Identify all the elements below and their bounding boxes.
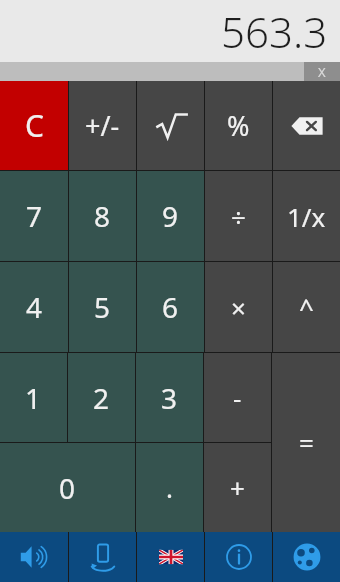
staticText: ÷ — [231, 199, 246, 234]
button[interactable]: 7 — [0, 171, 68, 261]
button[interactable]: - — [204, 353, 271, 442]
button[interactable]: ^ — [273, 262, 340, 352]
button[interactable]: 2 — [68, 353, 135, 442]
staticText: 563.3 — [221, 3, 328, 60]
staticText: . — [166, 470, 173, 505]
button[interactable]: +/- — [69, 81, 136, 170]
button[interactable]: 3 — [136, 353, 203, 442]
staticText: % — [227, 107, 250, 144]
staticText: 9 — [162, 197, 179, 235]
staticText: X — [318, 63, 326, 81]
button[interactable]: Web — [273, 532, 340, 582]
button[interactable]: 8 — [69, 171, 136, 261]
staticText: = — [299, 425, 314, 460]
staticText: × — [231, 290, 246, 325]
staticText: 2 — [93, 379, 110, 417]
staticText: +/- — [85, 107, 120, 144]
button[interactable]: ÷ — [205, 171, 272, 261]
button[interactable]: . — [136, 443, 203, 532]
button[interactable]: 1 — [0, 353, 67, 442]
staticText: 1/x — [287, 199, 326, 234]
button[interactable]: Square root — [137, 81, 204, 170]
button[interactable]: 6 — [137, 262, 204, 352]
staticText: 3 — [161, 379, 178, 417]
button[interactable]: Close — [304, 62, 340, 81]
button[interactable]: 4 — [0, 262, 68, 352]
button[interactable]: Info — [205, 532, 272, 582]
button[interactable]: 1/x — [273, 171, 340, 261]
button[interactable]: Rotate — [69, 532, 136, 582]
button[interactable]: Sound — [0, 532, 68, 582]
staticText: 7 — [26, 197, 43, 235]
staticText: + — [230, 470, 245, 505]
button[interactable]: + — [204, 443, 271, 532]
staticText: 0 — [59, 469, 76, 507]
button[interactable]: Backspace — [273, 81, 340, 170]
button[interactable]: × — [205, 262, 272, 352]
staticText: 4 — [26, 288, 43, 326]
staticText: C — [25, 105, 44, 146]
button[interactable]: = — [272, 353, 340, 532]
staticText: ^ — [299, 290, 314, 325]
button[interactable]: Language — [137, 532, 204, 582]
staticText: 5 — [94, 288, 111, 326]
button[interactable]: 5 — [69, 262, 136, 352]
button[interactable]: 9 — [137, 171, 204, 261]
staticText: - — [233, 380, 242, 415]
staticText: 8 — [94, 197, 111, 235]
button[interactable]: C — [0, 81, 68, 170]
button[interactable]: 0 — [0, 443, 135, 532]
staticText: 6 — [162, 288, 179, 326]
staticText: 1 — [25, 379, 42, 417]
button[interactable]: % — [205, 81, 272, 170]
